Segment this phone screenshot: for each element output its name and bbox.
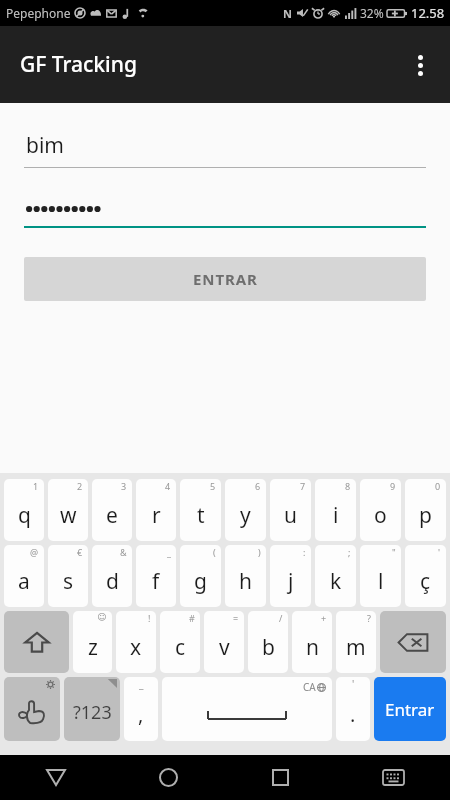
button[interactable]: Shift <box>4 611 69 673</box>
button[interactable]: _ <box>124 677 158 741</box>
staticText: b <box>262 633 275 662</box>
button[interactable]: # <box>160 611 200 673</box>
button[interactable]: Home <box>112 755 224 800</box>
button[interactable]: 4 <box>136 479 176 541</box>
staticText: ! <box>148 612 151 624</box>
staticText: @ <box>30 546 39 558</box>
button[interactable]: ( <box>180 545 221 607</box>
staticText: ; <box>348 546 351 558</box>
staticText: N <box>283 6 292 21</box>
staticText: 6 <box>255 480 261 492</box>
button[interactable]: ENTRAR <box>24 257 426 301</box>
staticText: 0 <box>435 480 441 492</box>
button[interactable]: 5 <box>180 479 221 541</box>
staticText: GF Tracking <box>20 50 137 79</box>
staticText: = <box>233 612 239 624</box>
button[interactable]: : <box>270 545 311 607</box>
button[interactable]: 6 <box>225 479 266 541</box>
button[interactable]: ' <box>405 545 446 607</box>
staticText: + <box>321 612 327 624</box>
button[interactable]: ? <box>336 611 376 673</box>
staticText: _ <box>167 546 171 558</box>
staticText: Pepephone <box>6 5 71 21</box>
staticText: k <box>330 567 342 596</box>
button[interactable]: Hide keyboard <box>337 755 450 800</box>
staticText: o <box>374 501 387 530</box>
staticText: u <box>284 501 297 530</box>
staticText: 9 <box>390 480 396 492</box>
staticText: ' <box>352 677 355 691</box>
button[interactable]: More options <box>396 41 444 89</box>
staticText: c <box>175 633 186 662</box>
staticText: v <box>219 633 230 662</box>
staticText: h <box>239 567 252 596</box>
button[interactable]: Back <box>0 755 112 800</box>
button[interactable]: 7 <box>270 479 311 541</box>
button[interactable]: & <box>92 545 132 607</box>
staticText: bim <box>26 131 64 160</box>
button[interactable]: 2 <box>48 479 88 541</box>
staticText: 3 <box>121 480 127 492</box>
staticText: 4 <box>165 480 171 492</box>
staticText: 1 <box>33 480 39 492</box>
button[interactable]: / <box>248 611 288 673</box>
staticText: CA <box>303 680 316 694</box>
staticText: i <box>333 501 339 530</box>
staticText: 8 <box>345 480 351 492</box>
staticText: & <box>120 546 127 558</box>
staticText: a <box>18 567 30 596</box>
button[interactable]: € <box>48 545 88 607</box>
button[interactable]: + <box>292 611 332 673</box>
button[interactable]: Space <box>162 677 332 741</box>
staticText: d <box>106 567 119 596</box>
staticText: f <box>152 567 160 596</box>
staticText: p <box>419 501 432 530</box>
button[interactable]: 3 <box>92 479 132 541</box>
button[interactable]: 9 <box>360 479 401 541</box>
staticText: " <box>392 546 396 558</box>
staticText: ' <box>438 546 441 558</box>
staticText: Entrar <box>385 698 435 721</box>
staticText: t <box>197 501 205 530</box>
staticText: _ <box>139 677 144 691</box>
button[interactable]: Entrar <box>374 677 446 741</box>
staticText: x <box>130 633 142 662</box>
staticText: . <box>350 701 356 728</box>
button[interactable]: ' <box>336 677 370 741</box>
staticText: n <box>306 633 319 662</box>
staticText: g <box>194 567 207 596</box>
staticText: q <box>18 501 31 530</box>
staticText: ç <box>420 567 431 596</box>
button[interactable]: Backspace <box>380 611 446 673</box>
button[interactable]: ) <box>225 545 266 607</box>
button[interactable]: ; <box>315 545 356 607</box>
staticText: / <box>279 612 283 624</box>
button[interactable]: ?123 <box>64 677 120 741</box>
staticText: l <box>378 567 384 596</box>
staticText: s <box>63 567 74 596</box>
staticText: ?123 <box>73 700 112 725</box>
button[interactable]: _ <box>136 545 176 607</box>
button[interactable]: Handwriting input <box>4 677 60 741</box>
staticText: : <box>303 546 306 558</box>
staticText: ENTRAR <box>193 269 258 289</box>
button[interactable]: " <box>360 545 401 607</box>
button[interactable]: Recent apps <box>224 755 337 800</box>
button[interactable]: = <box>204 611 244 673</box>
button[interactable] <box>24 197 426 228</box>
staticText: ( <box>213 546 216 558</box>
button[interactable]: @ <box>4 545 44 607</box>
staticText: 32% <box>360 5 384 21</box>
button[interactable]: ! <box>116 611 156 673</box>
staticText: ☺ <box>97 612 107 622</box>
button[interactable]: 8 <box>315 479 356 541</box>
button[interactable]: bim <box>24 131 426 168</box>
staticText: r <box>152 501 161 530</box>
button[interactable]: 1 <box>4 479 44 541</box>
staticText: € <box>77 546 83 558</box>
button[interactable]: ☺ <box>73 611 112 673</box>
button[interactable]: 0 <box>405 479 446 541</box>
staticText: # <box>189 612 195 624</box>
staticText: m <box>346 633 366 662</box>
staticText: z <box>88 633 98 662</box>
